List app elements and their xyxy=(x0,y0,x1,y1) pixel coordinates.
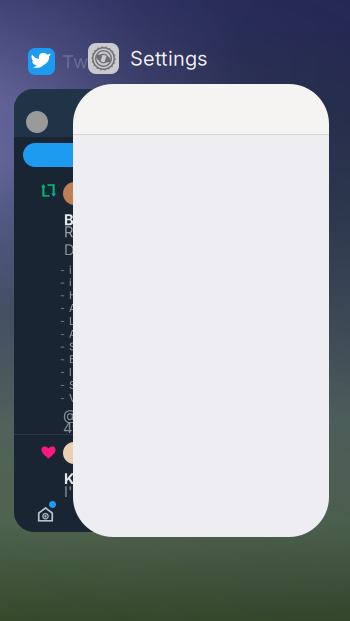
staticText: L xyxy=(69,314,75,327)
staticText: @ xyxy=(63,406,77,424)
staticText: Ba xyxy=(64,211,83,229)
staticText: - xyxy=(60,378,65,391)
staticText: A xyxy=(69,302,76,315)
staticText: - xyxy=(60,302,65,315)
staticText: 4w xyxy=(63,419,84,437)
staticText: I'r xyxy=(64,483,78,501)
staticText: - xyxy=(60,314,65,327)
staticText: Di xyxy=(64,241,79,259)
staticText: l xyxy=(69,366,72,379)
button[interactable]: Settings xyxy=(88,43,207,74)
staticText: E xyxy=(69,353,75,366)
staticText: - xyxy=(60,276,65,289)
staticText: - xyxy=(60,340,65,353)
button[interactable]: Twitter xyxy=(28,46,90,77)
staticText: - xyxy=(60,327,65,340)
staticText: Tw xyxy=(62,50,88,73)
staticText: - xyxy=(60,263,65,276)
staticText: - xyxy=(60,366,65,379)
staticText: Re xyxy=(64,223,82,241)
staticText: - xyxy=(60,289,65,302)
staticText: - xyxy=(60,353,65,366)
staticText: i xyxy=(69,263,72,276)
staticText: H xyxy=(69,289,77,302)
staticText: - xyxy=(60,391,65,404)
staticText: Ki xyxy=(64,470,79,488)
staticText: Settings xyxy=(130,46,207,71)
staticText: A xyxy=(69,327,76,340)
staticText: S xyxy=(69,340,76,353)
staticText: i xyxy=(69,276,72,289)
staticText: S xyxy=(69,378,76,391)
staticText: V xyxy=(69,391,76,404)
